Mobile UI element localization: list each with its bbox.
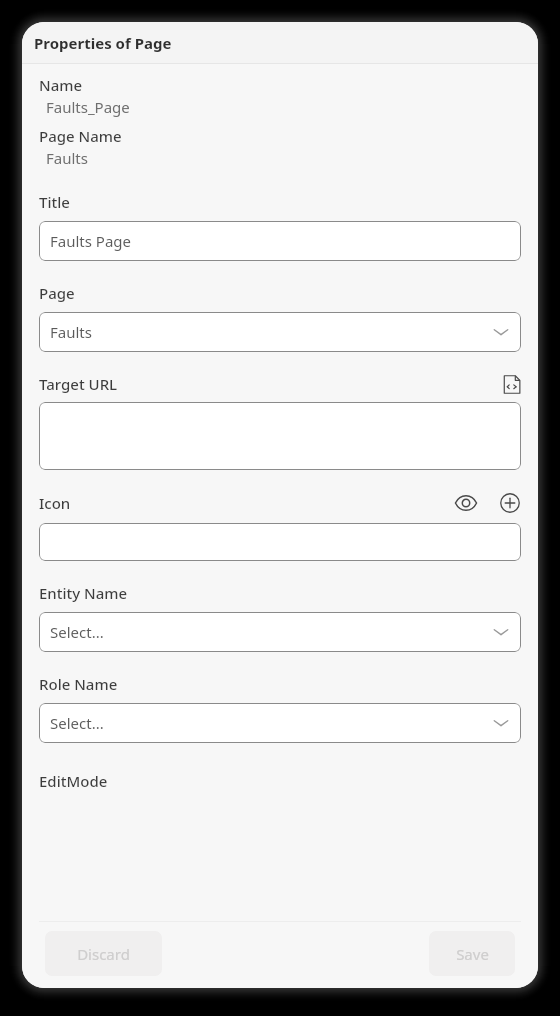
staticText: Faults_Page bbox=[46, 97, 130, 117]
staticText: Select... bbox=[50, 713, 104, 733]
button[interactable] bbox=[39, 523, 521, 561]
staticText: Icon bbox=[39, 493, 71, 513]
staticText: Faults Page bbox=[50, 231, 132, 251]
staticText: Discard bbox=[77, 944, 130, 964]
other: Add icon bbox=[499, 492, 521, 514]
button[interactable]: Select... bbox=[39, 703, 521, 743]
staticText: Save bbox=[456, 944, 489, 964]
button[interactable]: Preview icon bbox=[454, 491, 478, 515]
staticText: Faults bbox=[50, 322, 92, 342]
button[interactable]: Discard bbox=[45, 931, 162, 976]
button[interactable]: Edit source code bbox=[502, 375, 521, 394]
button[interactable]: Select... bbox=[39, 612, 521, 652]
staticText: EditMode bbox=[39, 771, 108, 791]
staticText: Target URL bbox=[39, 374, 118, 394]
button[interactable]: Save bbox=[429, 931, 515, 976]
button[interactable]: Faults bbox=[39, 312, 521, 352]
staticText: Entity Name bbox=[39, 583, 128, 603]
staticText: Page bbox=[39, 283, 75, 303]
staticText: Name bbox=[39, 75, 83, 95]
button[interactable]: Add icon bbox=[499, 492, 521, 514]
staticText: Properties of Page bbox=[34, 33, 172, 53]
staticText: Page Name bbox=[39, 126, 122, 146]
other: Edit source code bbox=[502, 375, 521, 394]
staticText: Select... bbox=[50, 622, 104, 642]
button[interactable] bbox=[39, 402, 521, 470]
staticText: Title bbox=[39, 192, 70, 212]
staticText: Role Name bbox=[39, 674, 118, 694]
other: Preview icon bbox=[454, 491, 478, 515]
staticText: Faults bbox=[46, 148, 88, 168]
button[interactable]: Faults Page bbox=[39, 221, 521, 261]
